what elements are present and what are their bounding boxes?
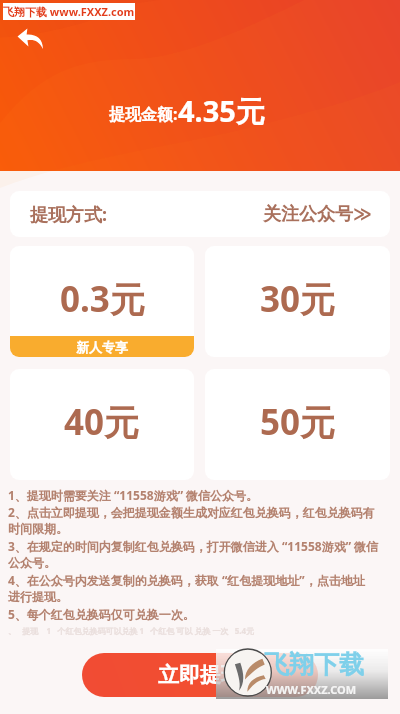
- button[interactable]: 30元: [205, 246, 390, 357]
- staticText: 3、在规定的时间内复制红包兑换码，打开微信进入 “11558游戏” 微信: [8, 538, 379, 554]
- button[interactable]: Back: [17, 28, 43, 49]
- staticText: 时间限期。: [8, 521, 68, 536]
- staticText: 4.35元: [178, 91, 265, 131]
- button[interactable]: 40元: [10, 369, 194, 480]
- staticText: 公众号。: [8, 555, 56, 570]
- staticText: 飞翔下载: [264, 649, 364, 680]
- staticText: 5、每个红包兑换码仅可兑换一次。: [8, 606, 195, 622]
- staticText: 进行提现。: [8, 589, 68, 604]
- staticText: 4、在公众号内发送复制的兑换码，获取 “红包提现地址”，点击地址: [8, 572, 365, 588]
- staticText: 、 提现 1 个红包兑换码可以兑换 1 个红包 可以 兑换 一次 5.4元: [8, 625, 255, 636]
- staticText: :: [173, 103, 178, 125]
- staticText: 提现方式:: [30, 202, 108, 227]
- button[interactable]: 立即提现: [82, 653, 318, 697]
- staticText: 50元: [260, 398, 336, 446]
- button[interactable]: 0.3元: [10, 246, 194, 357]
- staticText: 2、点击立即提现，会把提现金额生成对应红包兑换码，红包兑换码有: [8, 504, 375, 520]
- staticText: 飞翔下载 www.FXXZ.com: [3, 4, 135, 19]
- staticText: 30元: [260, 275, 336, 323]
- staticText: 立即提现: [158, 662, 242, 688]
- staticText: 提现金额: [109, 105, 173, 125]
- staticText: 0.3元: [60, 275, 145, 323]
- staticText: 关注公众号≫: [263, 203, 372, 226]
- staticText: 40元: [64, 398, 140, 446]
- staticText: 新人专享: [76, 339, 128, 355]
- staticText: 1、提现时需要关注 “11558游戏” 微信公众号。: [8, 487, 259, 503]
- button[interactable]: 提现方式:: [10, 191, 390, 237]
- button[interactable]: 50元: [205, 369, 390, 480]
- staticText: WWW.FXXZ.COM: [266, 682, 357, 697]
